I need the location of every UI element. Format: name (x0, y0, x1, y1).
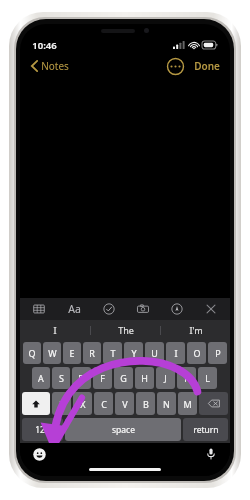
staticText: C (101, 398, 107, 410)
staticText: M (183, 398, 192, 410)
button[interactable]: Done (192, 56, 222, 76)
staticText: K (184, 372, 190, 384)
button[interactable]: Close keyboard (203, 301, 219, 317)
staticText: G (120, 372, 127, 384)
staticText: N (163, 398, 170, 410)
button[interactable]: O (187, 342, 206, 364)
staticText: space (112, 424, 135, 436)
button[interactable]: W (43, 342, 61, 364)
button[interactable]: N (157, 392, 176, 415)
button[interactable]: R (83, 342, 101, 364)
button[interactable]: C (94, 392, 113, 415)
staticText: D (78, 372, 85, 384)
button[interactable]: D (72, 367, 91, 389)
staticText: S (59, 372, 64, 384)
staticText: Z (59, 398, 65, 410)
button[interactable]: I (20, 320, 90, 340)
button[interactable]: 123 (22, 418, 63, 441)
button[interactable]: X (73, 392, 92, 415)
staticText: 10:46 (32, 39, 57, 52)
button[interactable]: U (145, 342, 164, 364)
button[interactable]: Aa (66, 301, 83, 317)
staticText: O (193, 347, 201, 359)
button[interactable]: V (115, 392, 134, 415)
staticText: R (89, 347, 95, 359)
button[interactable]: K (177, 367, 196, 389)
button[interactable]: G (114, 367, 133, 389)
staticText: Notes (41, 59, 69, 73)
staticText: B (143, 398, 149, 410)
staticText: L (205, 372, 210, 384)
button[interactable]: Backspace (199, 392, 228, 415)
staticText: I'm (189, 324, 203, 336)
button[interactable]: T (103, 342, 122, 364)
button[interactable]: Dictation (203, 446, 219, 462)
staticText: W (48, 347, 57, 359)
button[interactable]: Emoji (31, 446, 47, 462)
button[interactable]: More options (166, 57, 185, 76)
button[interactable]: Y (124, 342, 143, 364)
button[interactable]: J (156, 367, 175, 389)
staticText: Done (194, 59, 220, 73)
staticText: return (193, 424, 219, 436)
button[interactable]: E (63, 342, 81, 364)
button[interactable]: The (91, 320, 160, 340)
button[interactable]: Q (23, 342, 41, 364)
button[interactable]: S (52, 367, 70, 389)
button[interactable]: I'm (161, 320, 230, 340)
button[interactable]: I (166, 342, 185, 364)
staticText: Y (131, 347, 137, 359)
staticText: X (80, 398, 86, 410)
staticText: I (53, 324, 57, 336)
button[interactable]: space (65, 418, 181, 441)
staticText: E (69, 347, 75, 359)
button[interactable]: Z (52, 392, 71, 415)
staticText: A (38, 372, 44, 384)
staticText: 123 (35, 424, 50, 436)
button[interactable]: return (183, 418, 228, 441)
button[interactable]: Shift (22, 392, 50, 415)
staticText: H (141, 372, 148, 384)
button[interactable]: Notes (28, 56, 72, 76)
button[interactable]: L (198, 367, 217, 389)
staticText: F (100, 372, 105, 384)
staticText: I (174, 347, 178, 359)
button[interactable]: Insert table (31, 301, 47, 317)
staticText: The (118, 324, 134, 336)
button[interactable]: F (93, 367, 112, 389)
staticText: P (215, 347, 221, 359)
button[interactable]: Camera (135, 301, 151, 317)
staticText: Aa (68, 302, 81, 316)
staticText: J (164, 372, 167, 384)
button[interactable]: B (136, 392, 155, 415)
button[interactable]: P (208, 342, 227, 364)
staticText: Q (28, 347, 36, 359)
button[interactable]: Markup (169, 301, 185, 317)
button[interactable]: M (178, 392, 197, 415)
staticText: U (151, 347, 158, 359)
button[interactable]: A (32, 367, 50, 389)
staticText: T (110, 347, 116, 359)
button[interactable]: H (135, 367, 154, 389)
button[interactable]: Checklist (101, 301, 117, 317)
staticText: V (122, 398, 128, 410)
